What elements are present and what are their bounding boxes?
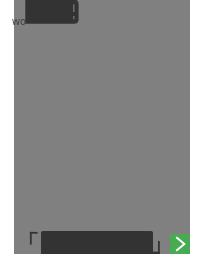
button[interactable]: Continue	[170, 234, 190, 254]
staticText: wo	[12, 14, 27, 28]
